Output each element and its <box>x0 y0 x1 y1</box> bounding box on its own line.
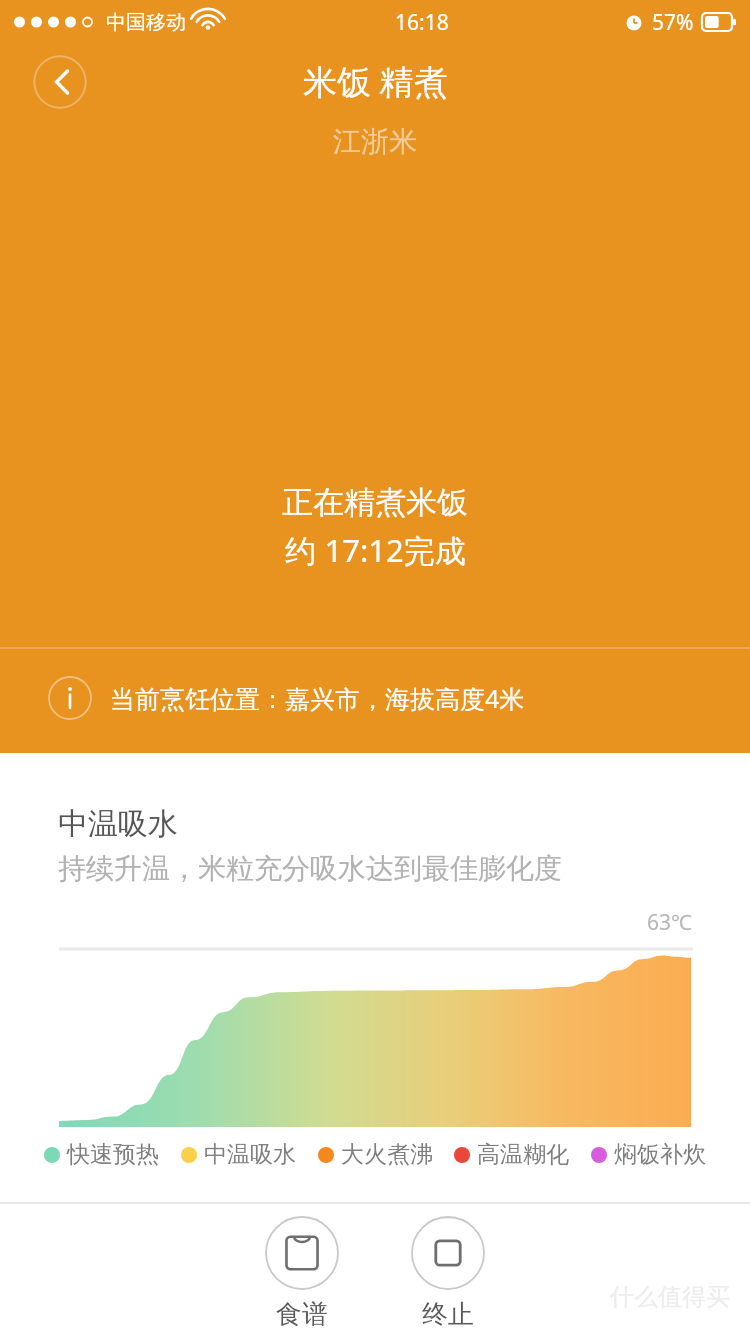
staticText: 持续升温，米粒充分吸水达到最佳膨化度 <box>58 851 562 886</box>
staticText: 中温吸水 <box>58 805 178 843</box>
staticText: 63℃ <box>647 908 692 937</box>
staticText: 江浙米 <box>333 124 417 159</box>
staticText: 正在精煮米饭 <box>282 483 468 522</box>
staticText: 焖饭补炊 <box>614 1140 706 1169</box>
staticText: 57% <box>652 8 694 37</box>
staticText: 米饭 精煮 <box>303 58 448 104</box>
staticText: 中国移动 <box>106 10 186 35</box>
button[interactable]: 焖饭补炊 <box>591 1140 706 1169</box>
button[interactable]: 高温糊化 <box>454 1140 569 1169</box>
staticText: 终止 <box>422 1298 474 1331</box>
staticText: 什么值得买 <box>610 1282 730 1312</box>
button[interactable]: 快速预热 <box>44 1140 159 1169</box>
staticText: 当前烹饪位置：嘉兴市，海拔高度4米 <box>110 681 525 715</box>
button[interactable]: 中温吸水 <box>181 1140 296 1169</box>
staticText: 中温吸水 <box>204 1140 296 1169</box>
staticText: 约 17:12完成 <box>285 529 466 571</box>
staticText: 食谱 <box>276 1298 328 1331</box>
staticText: 大火煮沸 <box>341 1140 433 1169</box>
button[interactable]: 大火煮沸 <box>318 1140 433 1169</box>
staticText: 快速预热 <box>67 1140 159 1169</box>
staticText: 高温糊化 <box>477 1140 569 1169</box>
staticText: 16:18 <box>395 8 449 37</box>
button[interactable]: 终止 <box>388 1216 508 1331</box>
button[interactable]: 食谱 <box>242 1216 362 1331</box>
button[interactable]: Back <box>33 55 87 109</box>
